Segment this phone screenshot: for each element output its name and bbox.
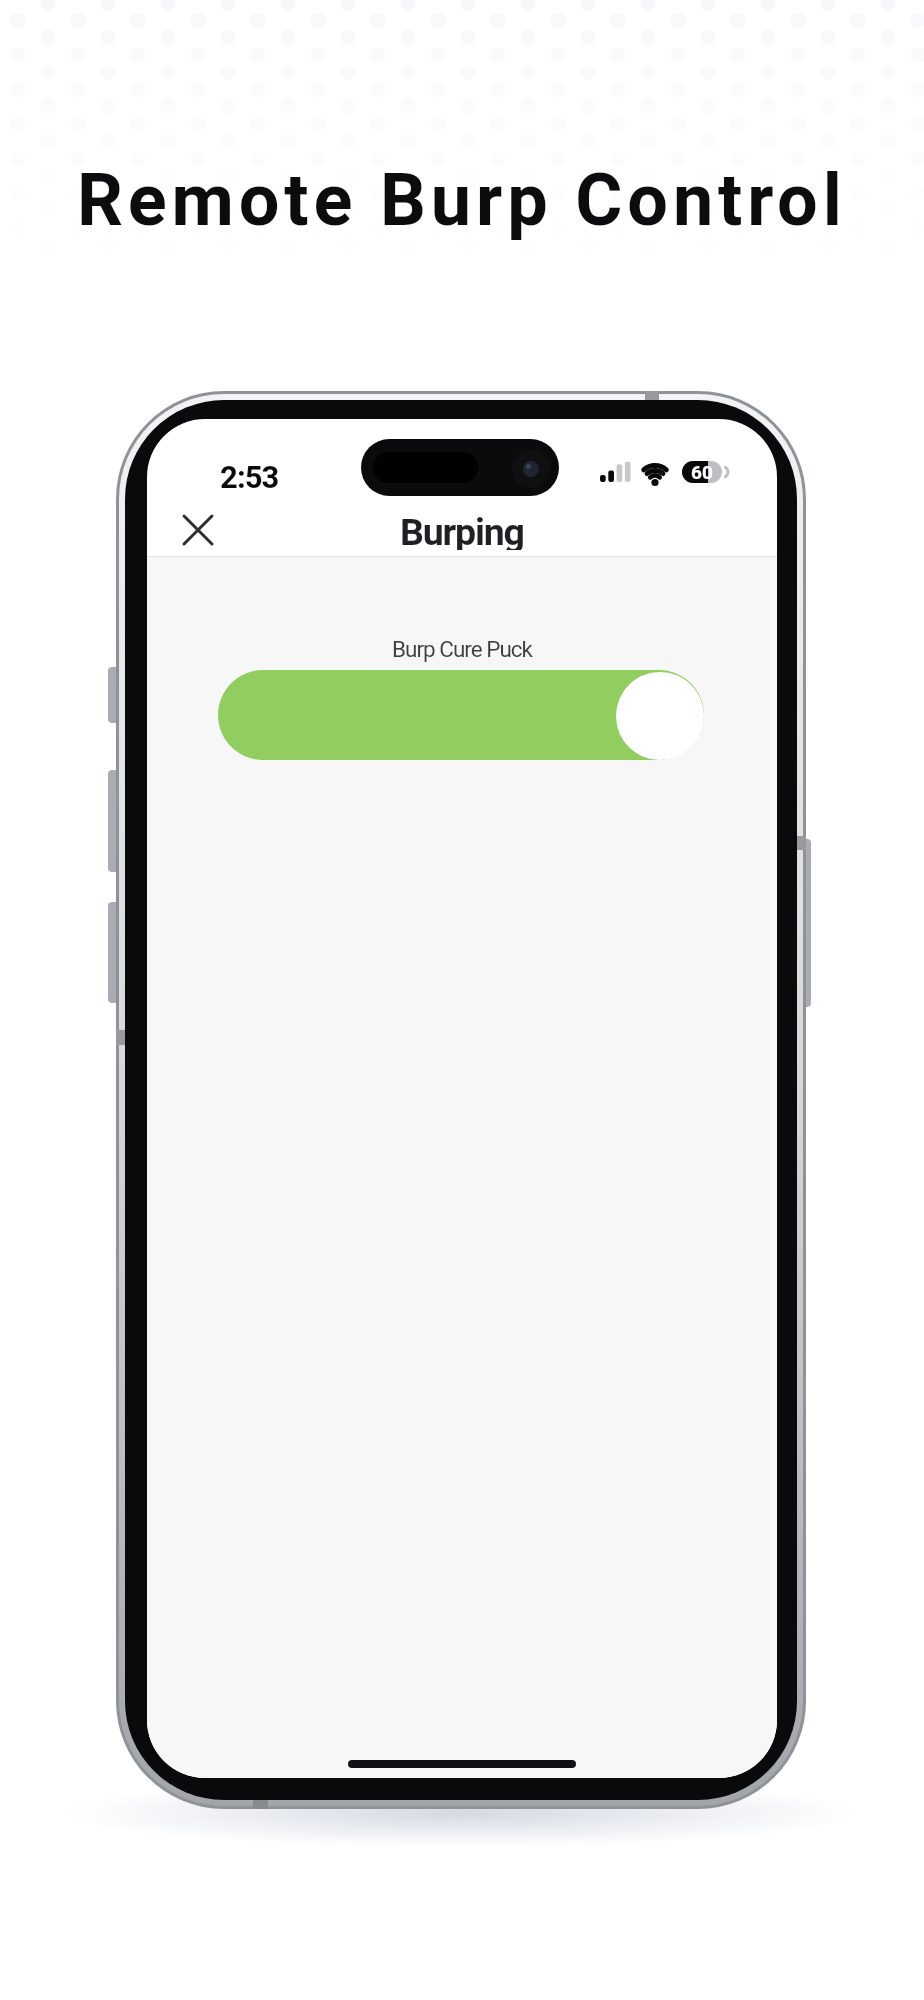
button[interactable] [218, 670, 704, 760]
staticText: 2:53 [220, 459, 279, 493]
staticText: Burping [400, 510, 524, 550]
staticText: Remote Burp Control [77, 158, 847, 242]
staticText: Burp Cure Puck [392, 636, 533, 662]
button[interactable] [174, 506, 222, 554]
staticText: 60 [691, 461, 713, 483]
